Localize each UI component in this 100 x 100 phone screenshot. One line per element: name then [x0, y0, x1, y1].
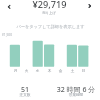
staticText: 土: [70, 69, 75, 74]
staticText: 日: [81, 69, 86, 74]
staticText: 32 時間 6 分: [56, 85, 96, 95]
staticText: 注文数: [15, 93, 35, 98]
button[interactable]: Next week: [84, 0, 96, 12]
button[interactable]: Day 4 sales bar: [44, 40, 54, 67]
staticText: 月: [13, 69, 18, 74]
staticText: 金: [58, 69, 63, 74]
button[interactable]: Day 3 sales bar: [33, 40, 43, 67]
staticText: 水: [35, 69, 40, 74]
staticText: 51: [15, 85, 35, 95]
staticText: バーをタップして詳細を表示します: [16, 24, 85, 29]
staticText: 火: [24, 69, 29, 74]
staticText: ¥1,500: [2, 33, 12, 37]
staticText: 木: [47, 69, 52, 74]
button[interactable]: Day 1 sales bar: [10, 40, 20, 67]
button[interactable]: Day 6 sales bar: [67, 40, 77, 67]
staticText: ¥29,719: [32, 0, 67, 11]
staticText: 売り上げ: [42, 11, 56, 15]
staticText: 営業時間: [56, 93, 96, 98]
button[interactable]: Previous week: [3, 1, 15, 13]
button[interactable]: Day 7 sales bar: [78, 40, 88, 67]
